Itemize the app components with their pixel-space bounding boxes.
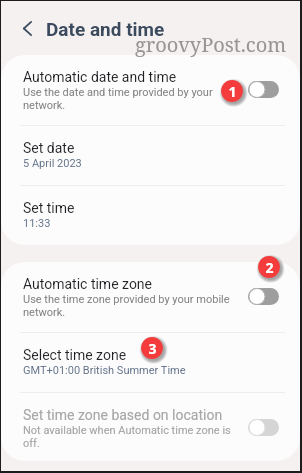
staticText: 5 April 2023 [23, 157, 82, 170]
button[interactable]: Select time zone [1, 333, 300, 392]
staticText: Automatic time zone [23, 276, 153, 292]
staticText: GMT+01:00 British Summer Time [23, 364, 186, 377]
button[interactable]: Automatic time zone [1, 262, 300, 332]
button[interactable]: Toggle [248, 419, 279, 436]
staticText: Use the date and time provided by your n… [23, 86, 213, 112]
staticText: Automatic date and time [23, 69, 177, 85]
staticText: 11:33 [23, 217, 51, 230]
staticText: 1 [228, 82, 237, 101]
button[interactable]: Automatic date and time [1, 55, 300, 125]
button[interactable]: Navigate up [12, 13, 42, 43]
button[interactable]: Set time [1, 186, 300, 245]
staticText: Set time [23, 200, 75, 216]
staticText: groovyPost.com [135, 31, 287, 58]
button[interactable]: Toggle [248, 288, 279, 305]
staticText: 2 [265, 258, 274, 277]
button[interactable]: Set time zone based on location [1, 393, 300, 461]
staticText: Set date [23, 140, 75, 156]
button[interactable]: Toggle [248, 81, 279, 98]
staticText: Use the time zone provided by your mobil… [23, 293, 230, 319]
staticText: Select time zone [23, 347, 127, 363]
button[interactable]: Set date [1, 126, 300, 185]
staticText: 3 [148, 339, 157, 358]
staticText: Not available when Automatic time zone i… [23, 424, 231, 450]
staticText: Set time zone based on location [23, 407, 223, 423]
staticText: Date and time [46, 18, 165, 40]
